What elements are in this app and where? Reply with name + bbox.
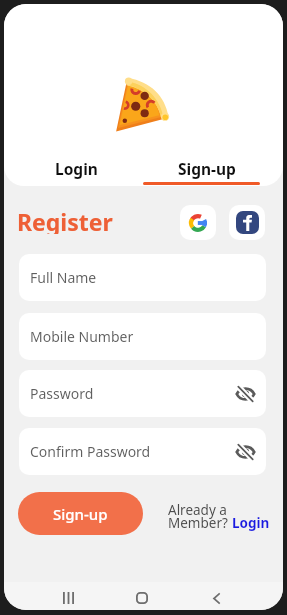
- button[interactable]: Mobile Number: [19, 313, 266, 360]
- staticText: Login: [55, 158, 98, 179]
- button[interactable]: Recents: [54, 584, 82, 610]
- button[interactable]: Sign-up: [145, 154, 269, 182]
- staticText: Password: [30, 384, 94, 403]
- staticText: Register: [17, 206, 113, 234]
- button[interactable]: Sign-up: [18, 492, 143, 535]
- button[interactable]: Login: [26, 154, 126, 182]
- staticText: Mobile Number: [30, 327, 134, 346]
- staticText: Sign-up: [178, 158, 236, 179]
- staticText: Confirm Password: [30, 442, 151, 461]
- staticText: Sign-up: [53, 504, 108, 524]
- button[interactable]: Sign up with Google: [180, 205, 216, 240]
- button[interactable]: Confirm Password: [19, 428, 266, 475]
- button[interactable]: Home: [128, 584, 156, 610]
- other: Show password: [236, 387, 255, 401]
- other: Show password: [236, 445, 255, 459]
- staticText: Already a: [168, 501, 227, 519]
- button[interactable]: Full Name: [19, 254, 266, 301]
- button[interactable]: Sign up with Facebook: [229, 205, 265, 240]
- button[interactable]: Password: [19, 370, 266, 417]
- button[interactable]: Login: [232, 514, 270, 532]
- staticText: Member?: [168, 514, 232, 532]
- button[interactable]: Back: [202, 584, 230, 610]
- staticText: Full Name: [30, 268, 97, 287]
